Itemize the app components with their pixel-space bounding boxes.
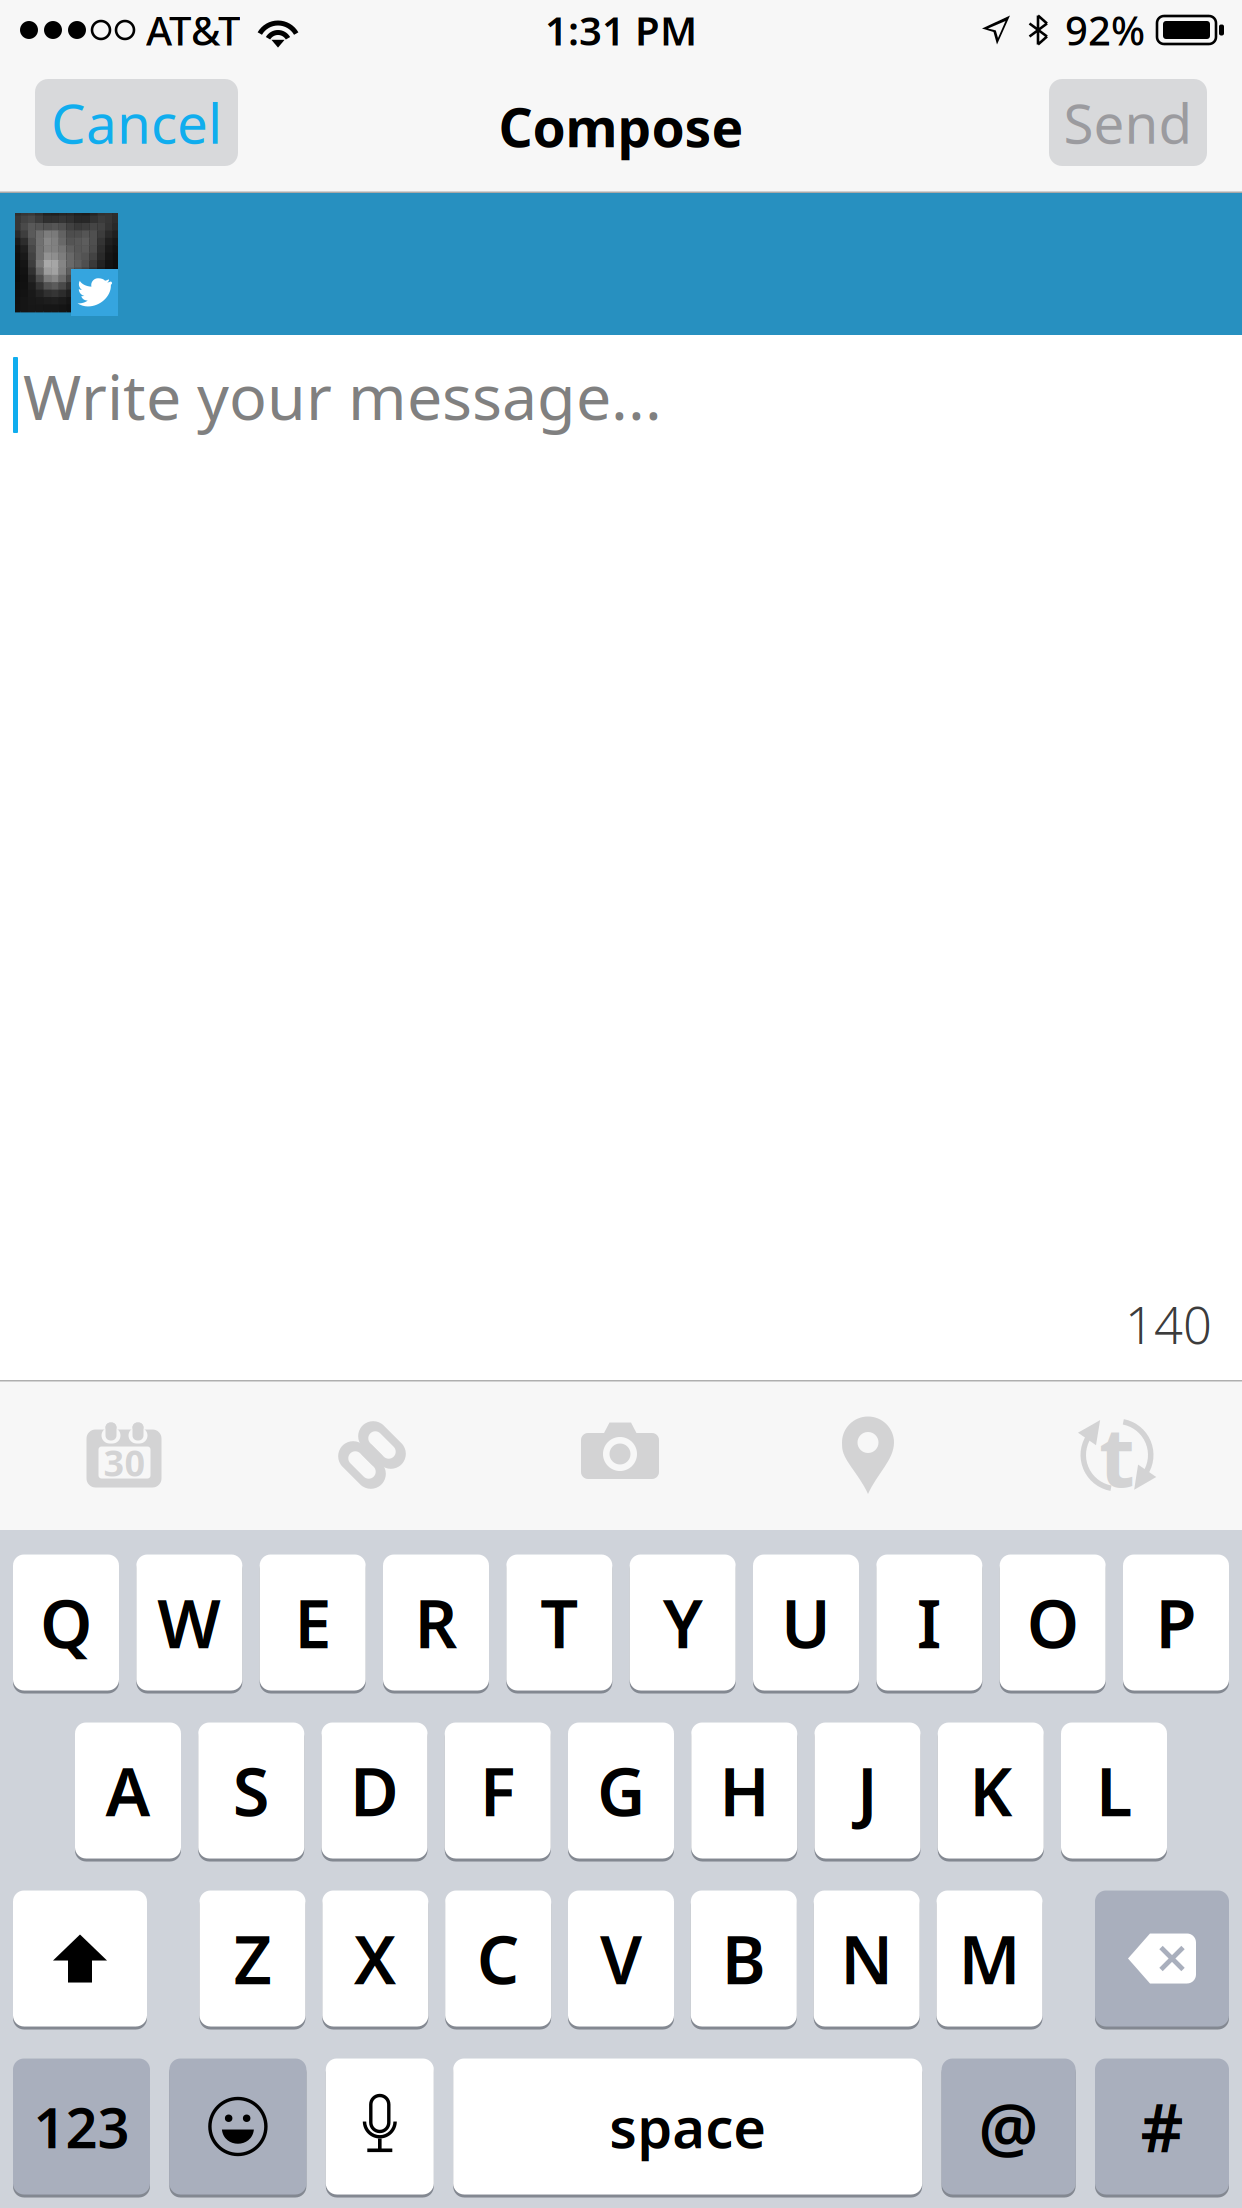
staticText: 140 — [1125, 1291, 1212, 1358]
button[interactable] — [568, 1889, 674, 2028]
staticText: B — [722, 1914, 766, 2003]
button[interactable]: Location — [744, 1395, 992, 1515]
staticText: J — [857, 1746, 878, 1835]
staticText: U — [781, 1578, 831, 1667]
button[interactable]: Emoji — [169, 2057, 306, 2196]
button[interactable]: Delete — [1095, 1889, 1229, 2028]
button[interactable] — [13, 1553, 119, 1692]
staticText: F — [480, 1746, 516, 1835]
button[interactable]: Twitter account — [15, 213, 118, 316]
button[interactable] — [876, 1553, 982, 1692]
button[interactable]: Schedule — [0, 1395, 248, 1515]
staticText: A — [105, 1746, 150, 1835]
button[interactable] — [383, 1553, 489, 1692]
button[interactable] — [506, 1553, 612, 1692]
staticText: Q — [40, 1578, 92, 1667]
staticText: AT&T — [146, 3, 240, 56]
staticText: 123 — [33, 2089, 129, 2164]
button[interactable]: Dictate — [326, 2057, 434, 2196]
button[interactable] — [321, 1721, 427, 1860]
button[interactable] — [1061, 1721, 1167, 1860]
staticText: H — [719, 1746, 769, 1835]
button[interactable] — [938, 1721, 1044, 1860]
button[interactable] — [568, 1721, 674, 1860]
button[interactable] — [630, 1553, 736, 1692]
staticText: I — [917, 1578, 942, 1667]
staticText: V — [600, 1914, 642, 2003]
button[interactable] — [753, 1553, 859, 1692]
button[interactable] — [199, 1889, 305, 2028]
button[interactable] — [453, 2057, 922, 2196]
staticText: P — [1155, 1578, 1196, 1667]
staticText: t — [1099, 1400, 1135, 1510]
staticText: O — [1027, 1578, 1079, 1667]
staticText: 1:31 PM — [545, 3, 697, 56]
staticText: T — [540, 1578, 578, 1667]
button[interactable]: Cancel — [35, 79, 238, 166]
staticText: W — [157, 1578, 221, 1667]
staticText: N — [840, 1914, 893, 2003]
button[interactable] — [322, 1889, 428, 2028]
button[interactable] — [198, 1721, 304, 1860]
button[interactable] — [1000, 1553, 1106, 1692]
button[interactable] — [445, 1721, 551, 1860]
button[interactable] — [814, 1889, 920, 2028]
button[interactable] — [814, 1721, 920, 1860]
staticText: @ — [979, 2082, 1039, 2171]
button[interactable]: Camera — [496, 1395, 744, 1515]
staticText: E — [294, 1578, 331, 1667]
staticText: Cancel — [51, 86, 222, 159]
button[interactable] — [445, 1889, 551, 2028]
staticText: Send — [1063, 86, 1192, 159]
button[interactable] — [75, 1721, 181, 1860]
staticText: space — [609, 2089, 766, 2164]
staticText: D — [350, 1746, 399, 1835]
button[interactable] — [13, 2057, 150, 2196]
staticText: 30 — [103, 1439, 145, 1486]
button[interactable]: Write your message... — [0, 335, 1242, 1380]
button[interactable] — [691, 1889, 797, 2028]
staticText: # — [1140, 2082, 1183, 2171]
staticText: Compose — [498, 91, 743, 162]
staticText: G — [597, 1746, 645, 1835]
button[interactable]: Add link — [248, 1395, 496, 1515]
button[interactable] — [1123, 1553, 1229, 1692]
button[interactable] — [260, 1553, 366, 1692]
staticText: X — [354, 1914, 397, 2003]
button[interactable]: Shift — [13, 1889, 147, 2028]
staticText: K — [969, 1746, 1012, 1835]
button[interactable]: Retweet — [992, 1395, 1242, 1515]
button[interactable] — [1095, 2057, 1229, 2196]
staticText: 92% — [1065, 3, 1145, 56]
staticText: L — [1096, 1746, 1132, 1835]
staticText: Y — [663, 1578, 703, 1667]
button[interactable] — [942, 2057, 1076, 2196]
button[interactable]: Send — [1049, 79, 1207, 166]
button[interactable] — [936, 1889, 1042, 2028]
button[interactable] — [691, 1721, 797, 1860]
staticText: Z — [233, 1914, 271, 2003]
staticText: S — [233, 1746, 270, 1835]
button[interactable] — [136, 1553, 242, 1692]
staticText: Write your message... — [23, 354, 662, 437]
staticText: M — [958, 1914, 1020, 2003]
staticText: C — [477, 1914, 520, 2003]
staticText: R — [414, 1578, 457, 1667]
